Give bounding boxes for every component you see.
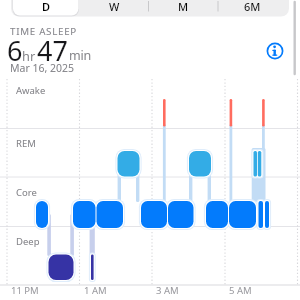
staticText: 47 [37,32,68,69]
staticText: 3 AM [156,284,179,297]
staticText: M [178,0,189,14]
button[interactable]: D [14,0,79,15]
staticText: W [109,0,120,14]
staticText: Deep [16,235,40,248]
staticText: min [69,47,92,64]
staticText: Core [16,186,37,199]
staticText: 1 AM [84,284,107,297]
button[interactable]: 6M [218,0,286,15]
staticText: Awake [16,84,46,97]
button[interactable]: M [149,0,217,15]
staticText: 5 AM [229,284,252,297]
button[interactable]: W [80,0,148,15]
button[interactable] [266,42,284,60]
staticText: D [42,0,51,14]
staticText: hr [22,47,36,64]
staticText: TIME ASLEEP [10,25,77,38]
staticText: Mar 16, 2025 [10,61,75,75]
staticText: 11 PM [11,284,39,297]
staticText: 6 [7,32,23,69]
staticText: REM [16,137,36,150]
staticText: 6M [244,0,261,14]
